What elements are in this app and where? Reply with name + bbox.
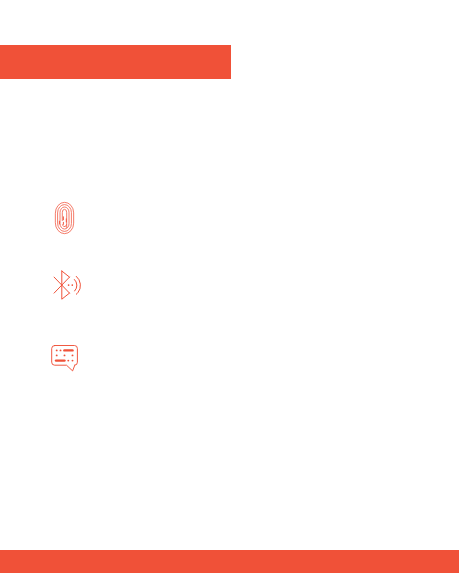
button[interactable]: Fingerprint <box>0 186 459 250</box>
button[interactable]: Bluetooth <box>0 253 459 317</box>
button[interactable]: Messages <box>0 329 459 393</box>
